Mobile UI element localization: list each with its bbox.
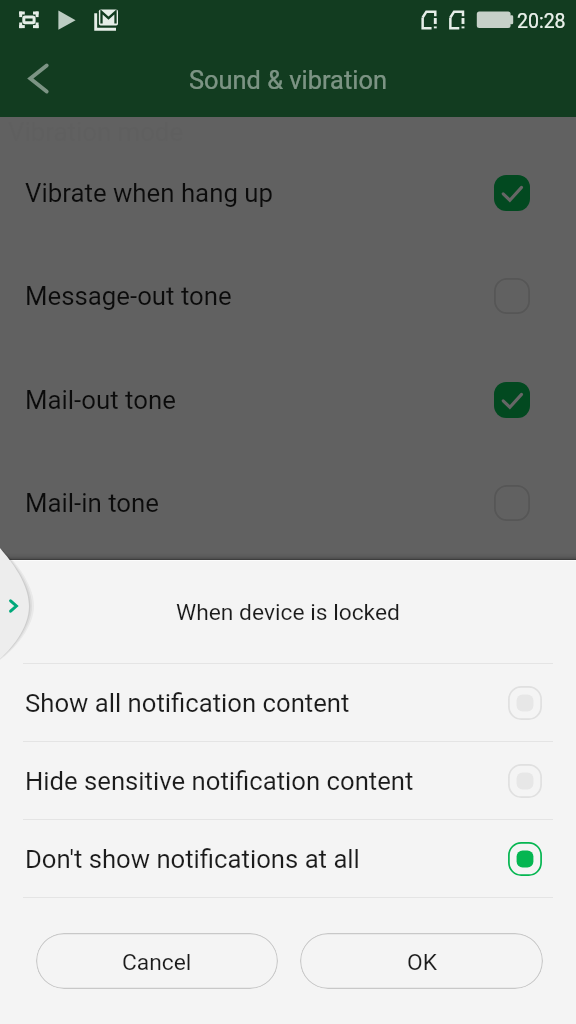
staticText: Show all notification content [25, 688, 350, 718]
button[interactable]: Message-out tone [0, 244, 576, 347]
staticText: Vibrate when hang up [25, 178, 273, 208]
button[interactable]: Back [15, 55, 62, 102]
button[interactable]: Hide sensitive notification content [0, 742, 576, 819]
staticText: Message-out tone [25, 281, 232, 311]
button[interactable]: Vibrate when hang up [0, 141, 576, 244]
staticText: Mail-in tone [25, 488, 159, 518]
button[interactable]: Cancel [36, 933, 278, 989]
button[interactable]: Show all notification content [0, 664, 576, 741]
staticText: Hide sensitive notification content [25, 766, 414, 796]
staticText: Sound & vibration [189, 65, 387, 95]
button[interactable]: Mail-out tone [0, 348, 576, 451]
staticText: When device is locked [176, 599, 400, 626]
button[interactable]: Mail-in tone [0, 451, 576, 554]
button[interactable]: Don't show notifications at all [0, 820, 576, 897]
staticText: OK [407, 949, 437, 976]
button[interactable]: OK [300, 933, 543, 989]
staticText: Cancel [122, 949, 192, 976]
staticText: Don't show notifications at all [25, 844, 360, 874]
staticText: 20:28 [517, 10, 566, 33]
staticText: Mail-out tone [25, 385, 176, 415]
